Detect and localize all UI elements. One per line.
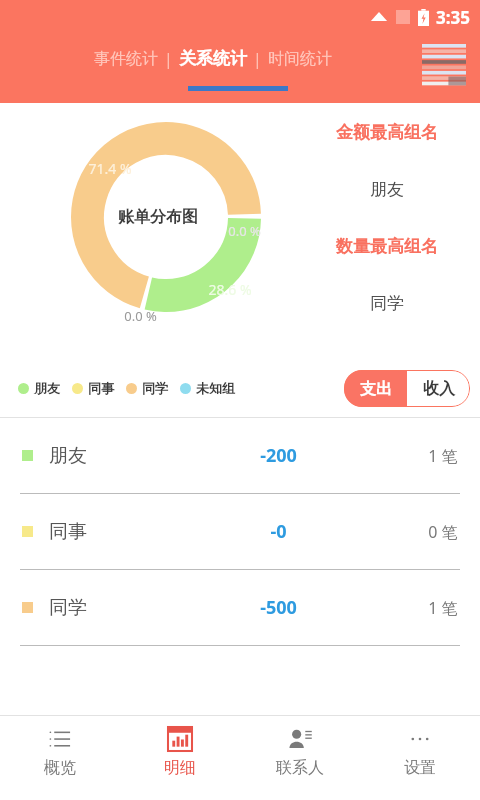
button[interactable]: 收入 [407,370,470,407]
staticText: | [164,48,173,70]
button[interactable]: 同学 [126,380,168,396]
button[interactable]: Report [420,42,468,90]
button[interactable]: 同事 [0,494,480,569]
button[interactable]: Details [120,727,240,800]
staticText: 同事 [49,520,87,544]
staticText: 1 笔 [428,597,458,619]
staticText: 71.4 % [88,159,132,178]
staticText: 同事 [88,380,114,396]
staticText: 关系统计 [179,48,247,69]
button[interactable]: 未知组 [180,380,235,396]
staticText: -0 [270,519,287,544]
staticText: 0.0 % [124,307,157,325]
staticText: 收入 [423,379,455,399]
other: Overview [48,727,72,751]
staticText: 未知组 [196,380,235,396]
staticText: 3:35 [436,6,470,29]
other: Contacts [288,727,312,751]
button[interactable]: 关系统计 [173,42,253,75]
button[interactable]: 支出 [344,370,407,407]
staticText: 朋友 [49,444,87,468]
staticText: -500 [260,595,297,620]
button[interactable]: 事件统计 [88,43,164,75]
staticText: 朋友 [34,380,60,396]
staticText: 设置 [404,758,436,778]
staticText: 账单分布图 [118,207,198,227]
button[interactable]: 同学 [0,570,480,645]
staticText: 同学 [370,293,404,314]
button[interactable]: Overview [0,727,120,800]
staticText: 同学 [49,596,87,620]
button[interactable]: Settings [360,727,480,800]
staticText: 数量最高组名 [336,236,438,257]
staticText: 28.6 % [208,280,252,299]
staticText: 支出 [360,379,392,399]
button[interactable]: Contacts [240,727,360,800]
staticText: 明细 [164,758,196,778]
staticText: | [253,48,262,70]
staticText: 概览 [44,758,76,778]
staticText: -200 [260,443,297,468]
staticText: 同学 [142,380,168,396]
button[interactable]: 朋友 [0,418,480,493]
button[interactable]: 时间统计 [262,43,338,75]
staticText: 事件统计 [94,49,158,69]
staticText: 联系人 [276,758,324,778]
other: Settings [408,727,432,751]
staticText: 时间统计 [268,49,332,69]
button[interactable]: 同事 [72,380,114,396]
staticText: 朋友 [370,179,404,200]
button[interactable]: 朋友 [18,380,60,396]
staticText: 金额最高组名 [336,122,438,143]
staticText: 0.0 % [228,222,261,240]
staticText: 0 笔 [428,521,458,543]
other: Details [168,727,192,751]
staticText: 1 笔 [428,445,458,467]
